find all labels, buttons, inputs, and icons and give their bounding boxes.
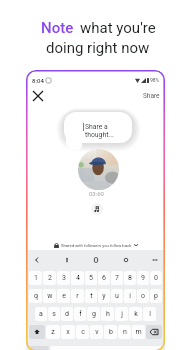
button[interactable]: r xyxy=(71,289,84,303)
button[interactable]: 8 xyxy=(124,271,136,285)
button[interactable]: Photo xyxy=(78,149,119,190)
button[interactable]: v xyxy=(90,325,103,339)
staticText: w xyxy=(47,292,53,300)
staticText: a xyxy=(39,310,43,318)
staticText: 98% xyxy=(150,77,160,83)
staticText: 9 xyxy=(141,274,145,282)
button[interactable]: h xyxy=(101,307,114,321)
button[interactable]: 5 xyxy=(85,271,97,285)
button[interactable]: z xyxy=(46,325,60,339)
staticText: what you're xyxy=(80,19,156,37)
button[interactable]: b xyxy=(104,325,117,339)
staticText: Share xyxy=(143,92,160,100)
staticText: 5 xyxy=(89,274,93,282)
staticText: 03:60 xyxy=(89,190,104,197)
button[interactable]: n xyxy=(118,325,131,339)
staticText: Note xyxy=(41,19,74,37)
button[interactable]: m xyxy=(132,325,145,339)
staticText: v xyxy=(95,328,99,336)
button[interactable]: Settings xyxy=(120,254,131,265)
button[interactable]: 0 xyxy=(150,271,162,285)
button[interactable]: 2 xyxy=(43,271,56,285)
staticText: r xyxy=(76,292,79,300)
button[interactable]: More options xyxy=(149,254,160,265)
button[interactable]: i xyxy=(124,289,136,303)
staticText: b xyxy=(109,328,113,336)
button[interactable]: Sticker xyxy=(61,254,72,265)
staticText: 3 xyxy=(62,274,66,282)
staticText: p xyxy=(154,292,158,300)
button[interactable]: 6 xyxy=(98,271,110,285)
button[interactable]: l xyxy=(143,307,156,321)
button[interactable]: s xyxy=(48,307,60,321)
staticText: z xyxy=(51,328,55,336)
staticText: doing right now xyxy=(46,39,150,57)
staticText: f xyxy=(79,310,82,318)
staticText: g xyxy=(92,310,96,318)
staticText: 8 xyxy=(128,274,132,282)
button[interactable]: t xyxy=(85,289,97,303)
button[interactable]: a xyxy=(35,307,47,321)
button[interactable]: d xyxy=(61,307,73,321)
button[interactable]: q xyxy=(29,289,42,303)
staticText: 6 xyxy=(102,274,106,282)
staticText: y xyxy=(102,292,106,300)
staticText: e xyxy=(62,292,66,300)
staticText: 0 xyxy=(154,274,158,282)
staticText: l xyxy=(149,310,151,318)
button[interactable]: Back xyxy=(31,254,42,265)
staticText: 8:04 xyxy=(32,77,44,84)
button[interactable]: 9 xyxy=(137,271,149,285)
staticText: o xyxy=(141,292,145,300)
button[interactable]: 3 xyxy=(57,271,70,285)
button[interactable]: w xyxy=(43,289,56,303)
staticText: i xyxy=(129,292,131,300)
button[interactable]: Symbols xyxy=(29,346,49,350)
staticText: q xyxy=(34,292,38,300)
staticText: x xyxy=(66,328,70,336)
button[interactable]: 7 xyxy=(111,271,123,285)
staticText: 1 xyxy=(34,274,38,282)
staticText: t xyxy=(90,292,93,300)
button[interactable]: c xyxy=(76,325,89,339)
button[interactable]: Add music xyxy=(91,203,103,215)
staticText: u xyxy=(115,292,119,300)
button[interactable]: j xyxy=(115,307,128,321)
button[interactable]: y xyxy=(98,289,110,303)
staticText: Shared with followers you follow back xyxy=(61,243,132,248)
staticText: 7 xyxy=(115,274,119,282)
staticText: m xyxy=(135,328,142,336)
button[interactable]: 1 xyxy=(29,271,42,285)
button[interactable]: Shared with followers you follow back xyxy=(26,238,165,252)
button[interactable]: g xyxy=(87,307,100,321)
staticText: k xyxy=(134,310,138,318)
button[interactable]: Share xyxy=(138,89,165,103)
staticText: c xyxy=(81,328,85,336)
button[interactable]: u xyxy=(111,289,123,303)
staticText: n xyxy=(123,328,127,336)
button[interactable]: Close xyxy=(29,87,47,105)
staticText: Share a thought... xyxy=(85,123,114,139)
staticText: d xyxy=(65,310,69,318)
button[interactable]: Backspace xyxy=(146,325,162,339)
button[interactable]: f xyxy=(74,307,86,321)
button[interactable]: e xyxy=(57,289,70,303)
button[interactable]: Clipboard xyxy=(90,254,101,265)
button[interactable]: k xyxy=(129,307,142,321)
staticText: 2 xyxy=(48,274,52,282)
button[interactable]: p xyxy=(150,289,162,303)
button[interactable]: o xyxy=(137,289,149,303)
staticText: h xyxy=(106,310,110,318)
button[interactable]: Share a thought... xyxy=(64,112,132,143)
staticText: 4 xyxy=(76,274,80,282)
button[interactable]: Space xyxy=(50,346,162,350)
button[interactable]: 4 xyxy=(71,271,84,285)
button[interactable]: Shift xyxy=(29,325,45,339)
staticText: s xyxy=(52,310,56,318)
staticText: j xyxy=(121,310,123,318)
button[interactable]: x xyxy=(61,325,75,339)
